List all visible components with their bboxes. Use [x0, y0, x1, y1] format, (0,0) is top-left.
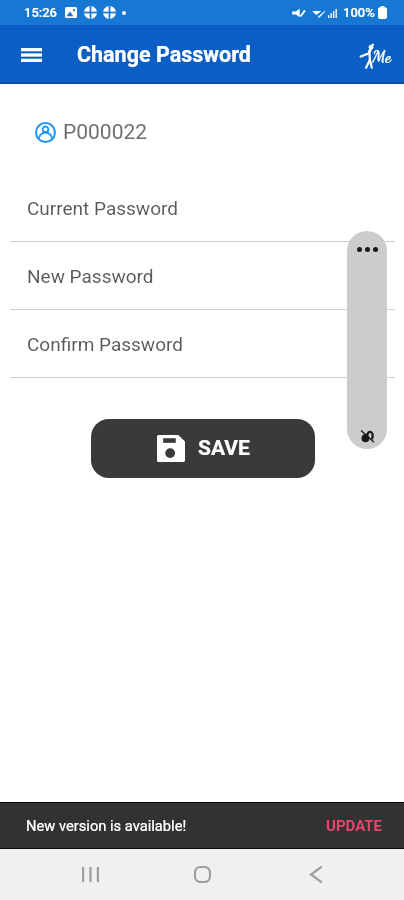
button[interactable]: Back [288, 849, 344, 900]
button[interactable]: Current Password [0, 174, 404, 241]
button[interactable]: UPDATE [322, 813, 387, 839]
button[interactable]: Open navigation menu [7, 31, 55, 79]
button[interactable]: Recent apps [62, 849, 118, 900]
button[interactable]: New Password [0, 242, 404, 309]
staticText: New Password [27, 265, 154, 287]
button[interactable]: Home [174, 849, 230, 900]
button[interactable]: Accessibility menu [347, 231, 387, 449]
staticText: New version is available! [26, 817, 187, 834]
staticText: Me [372, 46, 392, 66]
button[interactable]: Profile [353, 32, 399, 78]
staticText: 100% [343, 5, 375, 20]
staticText: UPDATE [326, 817, 383, 835]
button[interactable]: Confirm Password [0, 310, 404, 377]
staticText: Change Password [77, 42, 251, 67]
staticText: Current Password [27, 197, 178, 219]
staticText: SAVE [198, 436, 250, 461]
button[interactable]: New version is available! [0, 803, 404, 848]
button[interactable]: SAVE [91, 419, 315, 478]
staticText: Confirm Password [27, 333, 183, 355]
staticText: 15:26 [24, 5, 57, 20]
staticText: P000022 [63, 120, 148, 145]
